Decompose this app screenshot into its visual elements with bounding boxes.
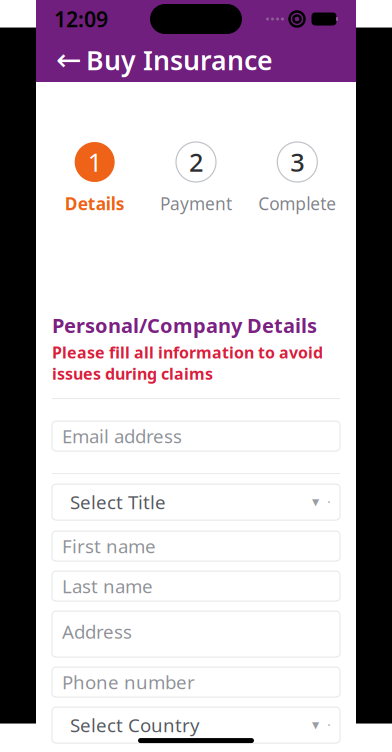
button[interactable]: Select Country <box>52 707 340 743</box>
staticText: Phone number <box>62 670 195 694</box>
button[interactable]: 3 <box>247 142 348 215</box>
staticText: ← <box>56 43 82 77</box>
button[interactable]: Back <box>52 40 86 80</box>
button[interactable]: Phone number <box>52 667 340 697</box>
staticText: Last name <box>62 574 153 598</box>
staticText: Email address <box>62 424 182 448</box>
staticText: 12:09 <box>54 5 108 33</box>
button[interactable]: Buy Insurance <box>86 40 273 80</box>
button[interactable]: 1 <box>44 142 145 215</box>
staticText: Complete <box>258 192 336 215</box>
staticText: Personal/Company Details <box>52 312 317 339</box>
staticText: Buy Insurance <box>86 42 273 78</box>
button[interactable]: Address <box>52 611 340 657</box>
button[interactable]: 2 <box>145 142 247 215</box>
staticText: Details <box>65 192 125 215</box>
button[interactable]: Select Title <box>52 484 340 520</box>
button[interactable]: Last name <box>52 571 340 601</box>
staticText: Select Country <box>70 713 200 737</box>
staticText: 3 <box>290 145 304 179</box>
staticText: ▼ <box>312 720 319 730</box>
button[interactable]: Email address <box>52 421 340 451</box>
staticText: Payment <box>160 192 232 215</box>
staticText: ▼ <box>312 497 319 507</box>
button[interactable]: First name <box>52 531 340 561</box>
staticText: 2 <box>189 145 203 179</box>
staticText: Please fill all information to avoid iss… <box>52 342 323 384</box>
staticText: First name <box>62 534 156 558</box>
staticText: 1 <box>88 145 102 179</box>
staticText: Address <box>62 619 132 644</box>
staticText: Select Title <box>70 490 166 514</box>
